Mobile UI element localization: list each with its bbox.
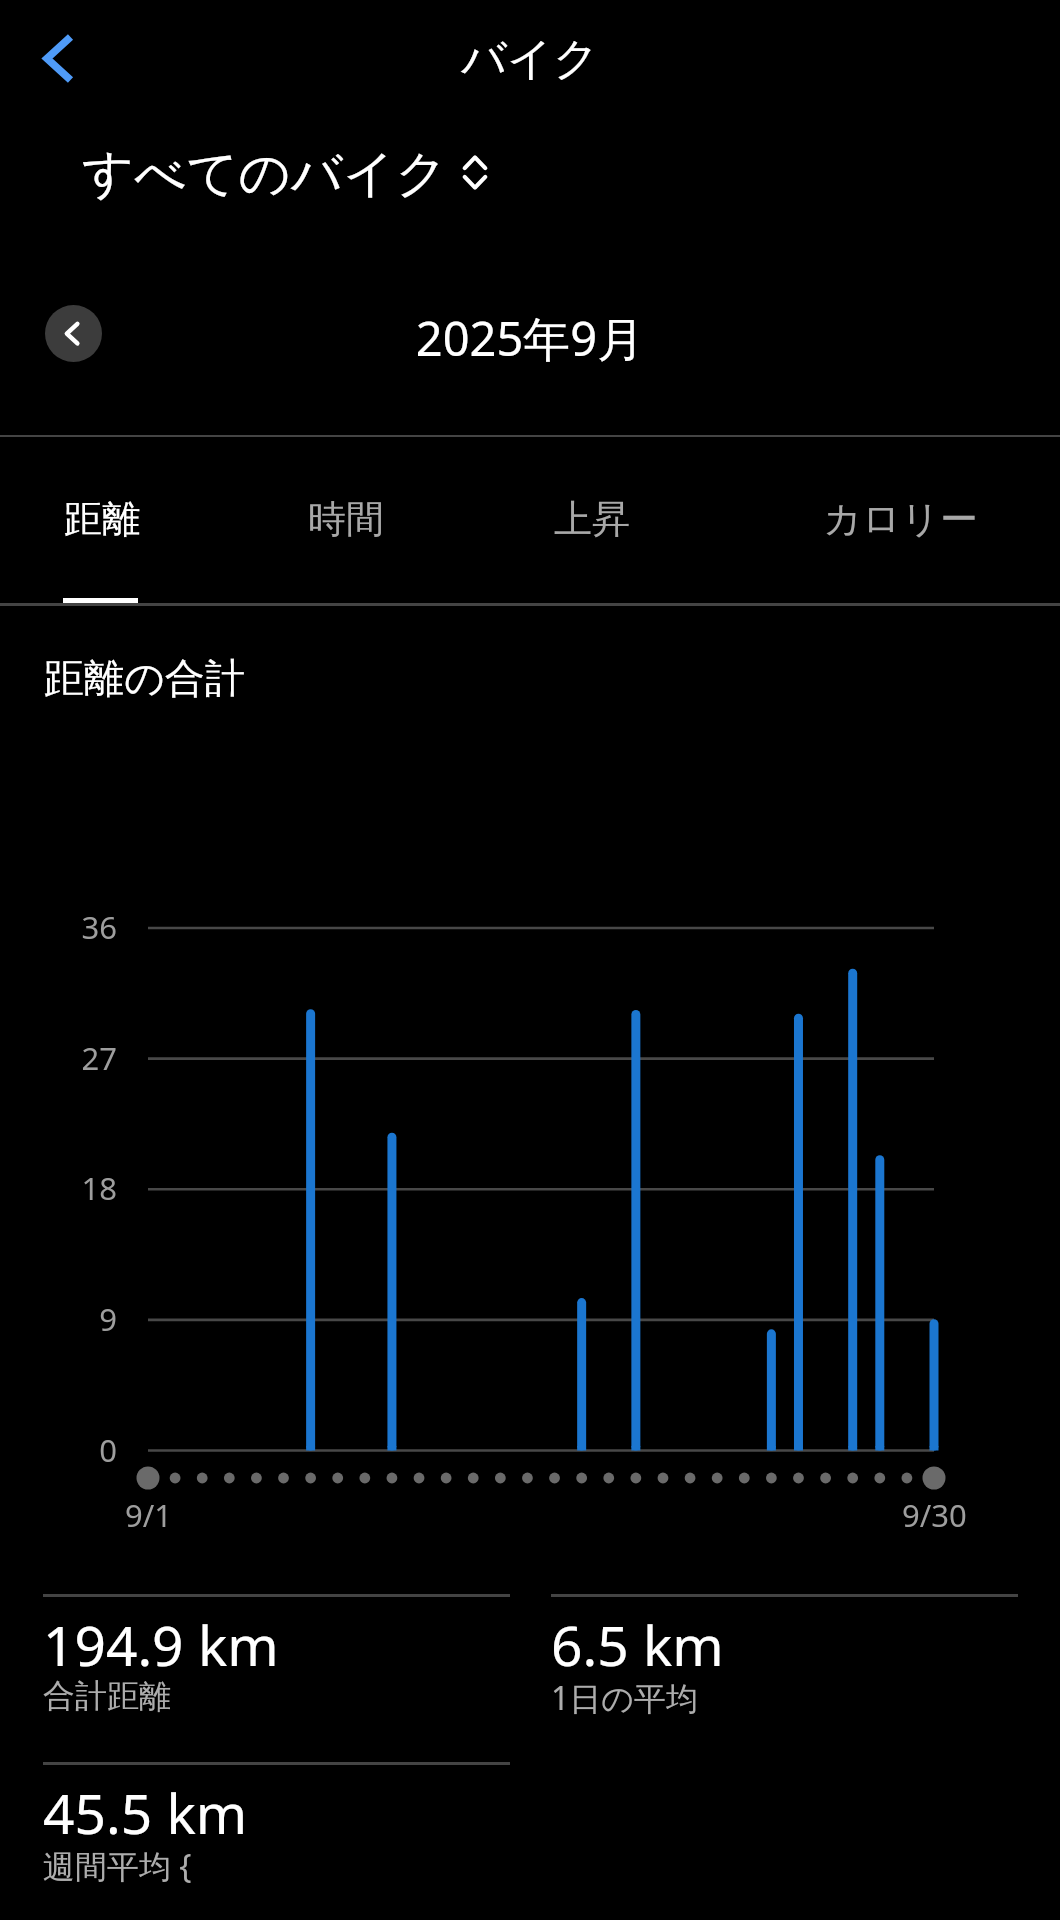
staticText: カロリー [823,495,978,543]
staticText: すべてのバイク [82,142,448,206]
staticText: 9 [99,1298,117,1340]
staticText: 1日の平均 [551,1676,699,1720]
staticText: 194.9 km [43,1607,279,1682]
button[interactable]: 6.5 km [551,1594,1018,1716]
staticText: 2025年9月 [0,306,1060,370]
staticText: 距離の合計 [44,653,245,703]
staticText: 上昇 [554,495,630,543]
staticText: 45.5 km [43,1775,248,1850]
staticText: 18 [81,1167,117,1209]
button[interactable]: すべてのバイク [60,127,520,217]
button[interactable]: カロリー [775,450,1025,600]
staticText: 36 [81,906,117,948]
staticText: 時間 [308,495,384,543]
button[interactable]: Previous month [45,305,102,362]
staticText: 9/30 [902,1494,967,1536]
button[interactable]: Back [7,13,97,103]
staticText: 距離 [64,495,140,543]
staticText: 9/1 [125,1494,172,1536]
staticText: 6.5 km [551,1607,724,1682]
button[interactable]: 時間 [221,450,471,600]
staticText: 合計距離 [43,1676,171,1716]
button[interactable]: 距離 [0,450,227,600]
staticText: 週間平均 { [43,1844,192,1888]
button[interactable]: 194.9 km [43,1594,510,1712]
staticText: バイク [0,31,1060,88]
button[interactable]: 45.5 km [43,1762,510,1884]
button[interactable]: 上昇 [467,450,717,600]
staticText: 27 [81,1037,117,1079]
staticText: 0 [99,1429,117,1471]
